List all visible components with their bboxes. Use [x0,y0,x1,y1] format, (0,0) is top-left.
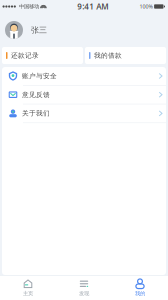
button[interactable]: 张三 [5,21,47,39]
button[interactable]: 我的 [112,276,168,300]
staticText: 关于我们 [22,109,50,117]
staticText: 意见反馈 [22,91,50,99]
button[interactable]: 我的借款 [85,47,166,64]
staticText: 张三 [31,25,47,35]
staticText: 100% [139,3,152,10]
staticText: 中国移动 [19,3,39,10]
staticText: 账户与安全 [22,72,57,80]
staticText: 主页 [23,290,33,297]
staticText: 我的借款 [94,51,122,60]
staticText: 我的 [135,290,145,297]
button[interactable]: 意见反馈 [2,86,166,104]
button[interactable]: 账户与安全 [2,67,166,86]
button[interactable]: 关于我们 [2,104,166,123]
button[interactable]: 主页 [0,276,56,300]
button[interactable]: 还款记录 [2,47,83,64]
staticText: 还款记录 [11,51,39,60]
staticText: 发现 [79,290,89,297]
staticText: 9:41 AM [77,1,108,12]
button[interactable]: 发现 [56,276,112,300]
